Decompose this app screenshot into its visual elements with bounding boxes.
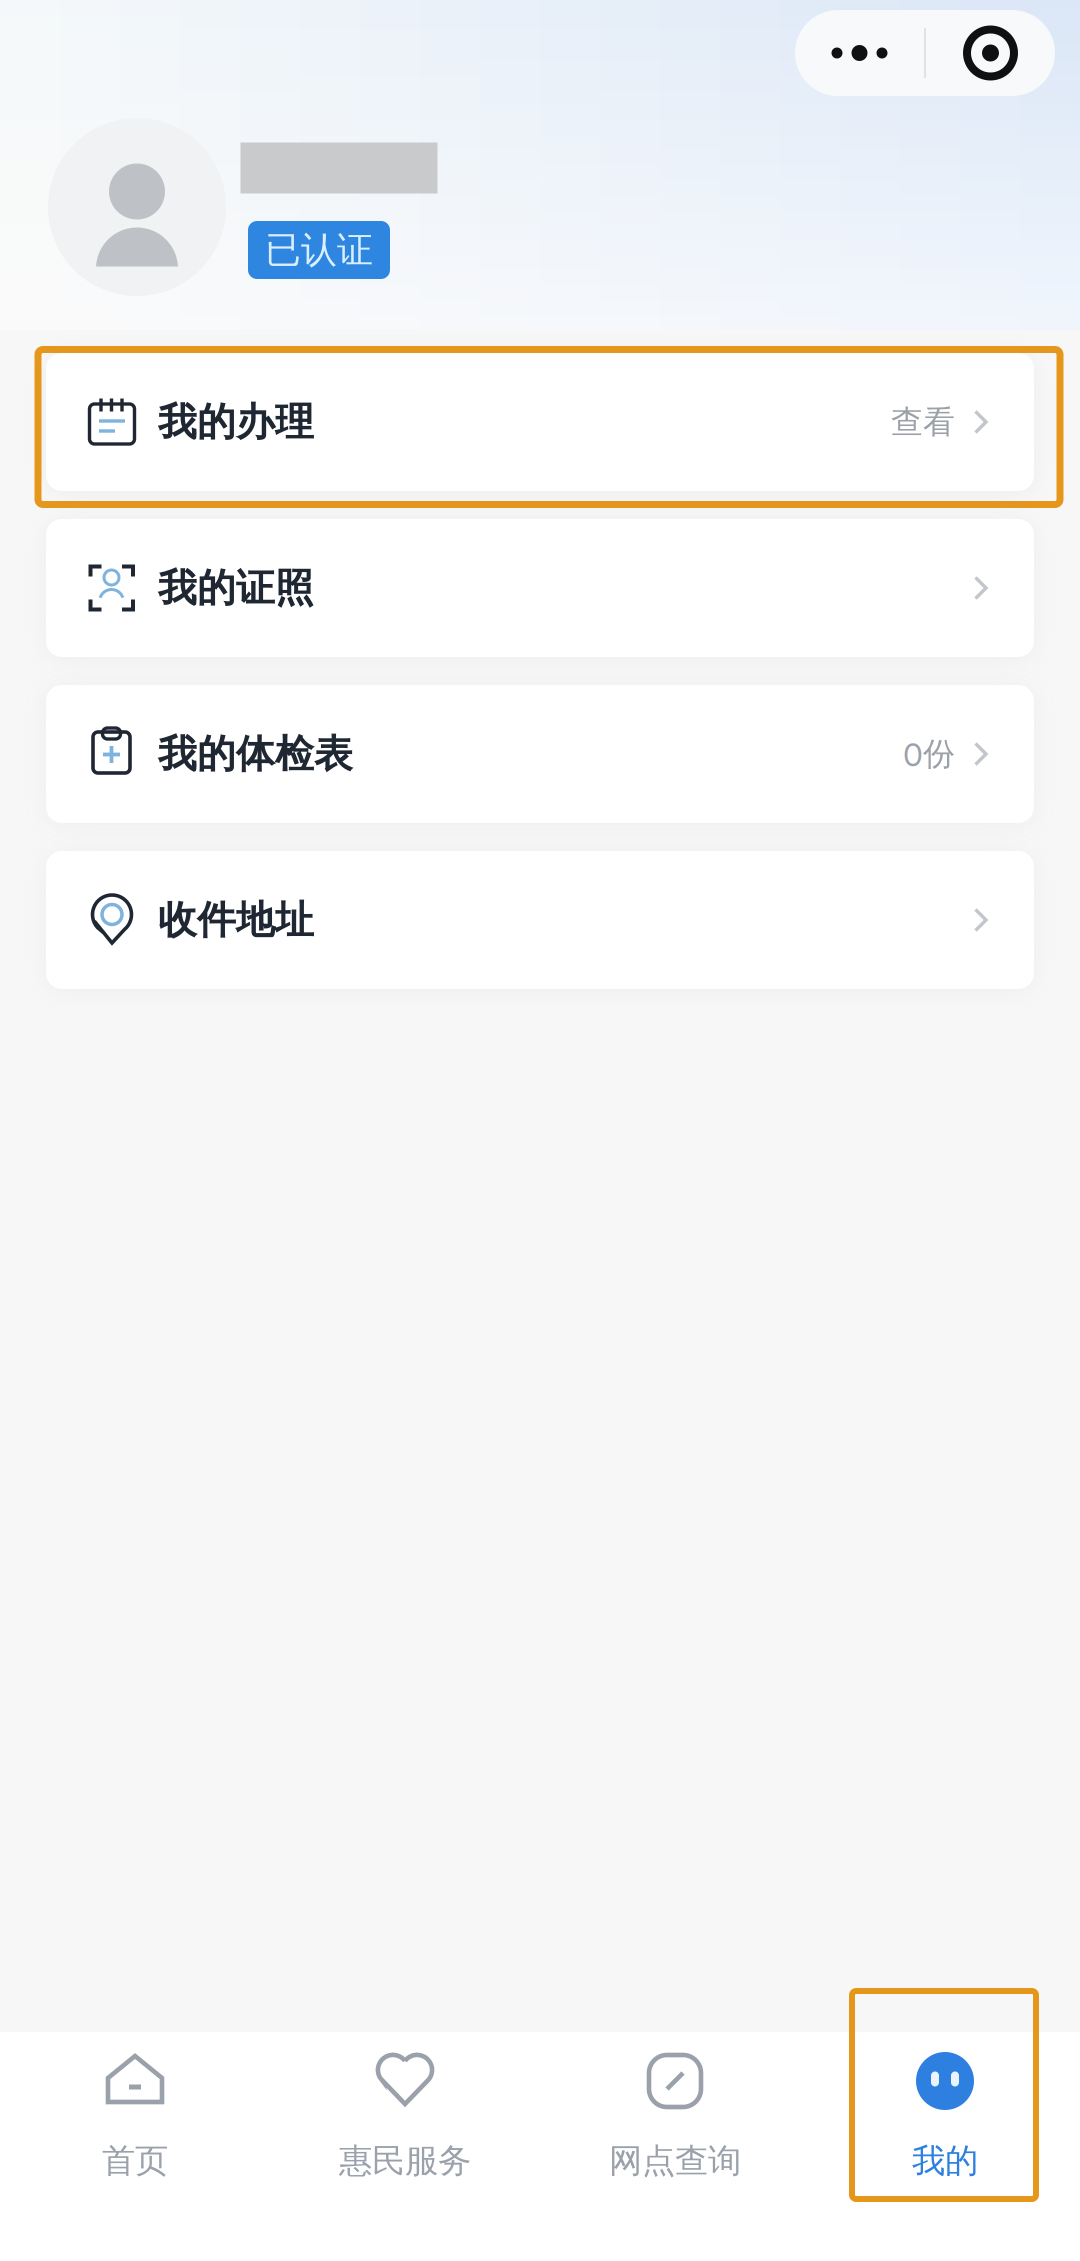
button[interactable]: 我的体检表 — [46, 685, 1034, 823]
button[interactable]: 我的办理 — [46, 353, 1034, 491]
staticText: 网点查询 — [609, 2140, 741, 2182]
staticText: 我的办理 — [158, 398, 314, 446]
staticText: 0份 — [903, 734, 955, 774]
staticText: 我的证照 — [158, 564, 314, 612]
button[interactable]: More — [795, 10, 924, 96]
button[interactable]: 首页 — [0, 2032, 270, 2261]
staticText: 已认证 — [265, 227, 373, 273]
button[interactable]: 网点查询 — [540, 2032, 810, 2261]
button[interactable]: 我的 — [810, 2032, 1080, 2261]
staticText: 查看 — [891, 402, 955, 442]
staticText: 收件地址 — [158, 896, 314, 944]
button[interactable]: 我的证照 — [46, 519, 1034, 657]
staticText: 首页 — [102, 2140, 168, 2182]
button[interactable]: 收件地址 — [46, 851, 1034, 989]
staticText: 我的 — [912, 2140, 978, 2182]
button[interactable]: Close mini program — [926, 10, 1055, 96]
staticText: 惠民服务 — [339, 2140, 471, 2182]
button[interactable]: 惠民服务 — [270, 2032, 540, 2261]
staticText: 我的体检表 — [158, 730, 353, 778]
